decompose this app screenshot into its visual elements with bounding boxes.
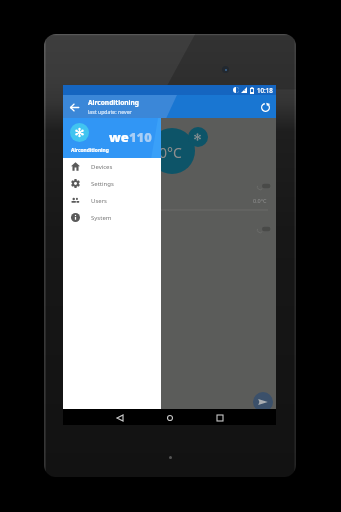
button[interactable]: Back bbox=[67, 100, 81, 114]
staticText: Devices bbox=[91, 163, 113, 171]
staticText: Airconditioning bbox=[88, 98, 139, 107]
staticText: 0°C bbox=[159, 143, 182, 162]
button[interactable]: Send bbox=[253, 392, 273, 412]
button[interactable]: Toggle bbox=[253, 225, 271, 233]
button[interactable]: Devices bbox=[63, 158, 161, 175]
button[interactable]: System bbox=[63, 209, 161, 226]
button[interactable]: Users bbox=[63, 192, 161, 209]
button[interactable]: Back bbox=[113, 411, 126, 424]
staticText: last update: never bbox=[88, 108, 132, 115]
button[interactable]: Settings bbox=[63, 175, 161, 192]
button[interactable]: Toggle bbox=[253, 182, 271, 190]
button[interactable]: Refresh bbox=[257, 99, 273, 115]
staticText: 0.0°C bbox=[253, 197, 267, 204]
button[interactable]: Recents bbox=[213, 411, 226, 424]
staticText: 110 bbox=[129, 128, 152, 146]
staticText: System bbox=[91, 214, 112, 222]
staticText: Settings bbox=[91, 180, 114, 188]
button[interactable]: Home bbox=[163, 411, 176, 424]
staticText: we bbox=[109, 128, 129, 146]
staticText: Users bbox=[91, 197, 107, 205]
staticText: Airconditioning bbox=[71, 147, 109, 154]
staticText: 10:18 bbox=[257, 86, 273, 94]
